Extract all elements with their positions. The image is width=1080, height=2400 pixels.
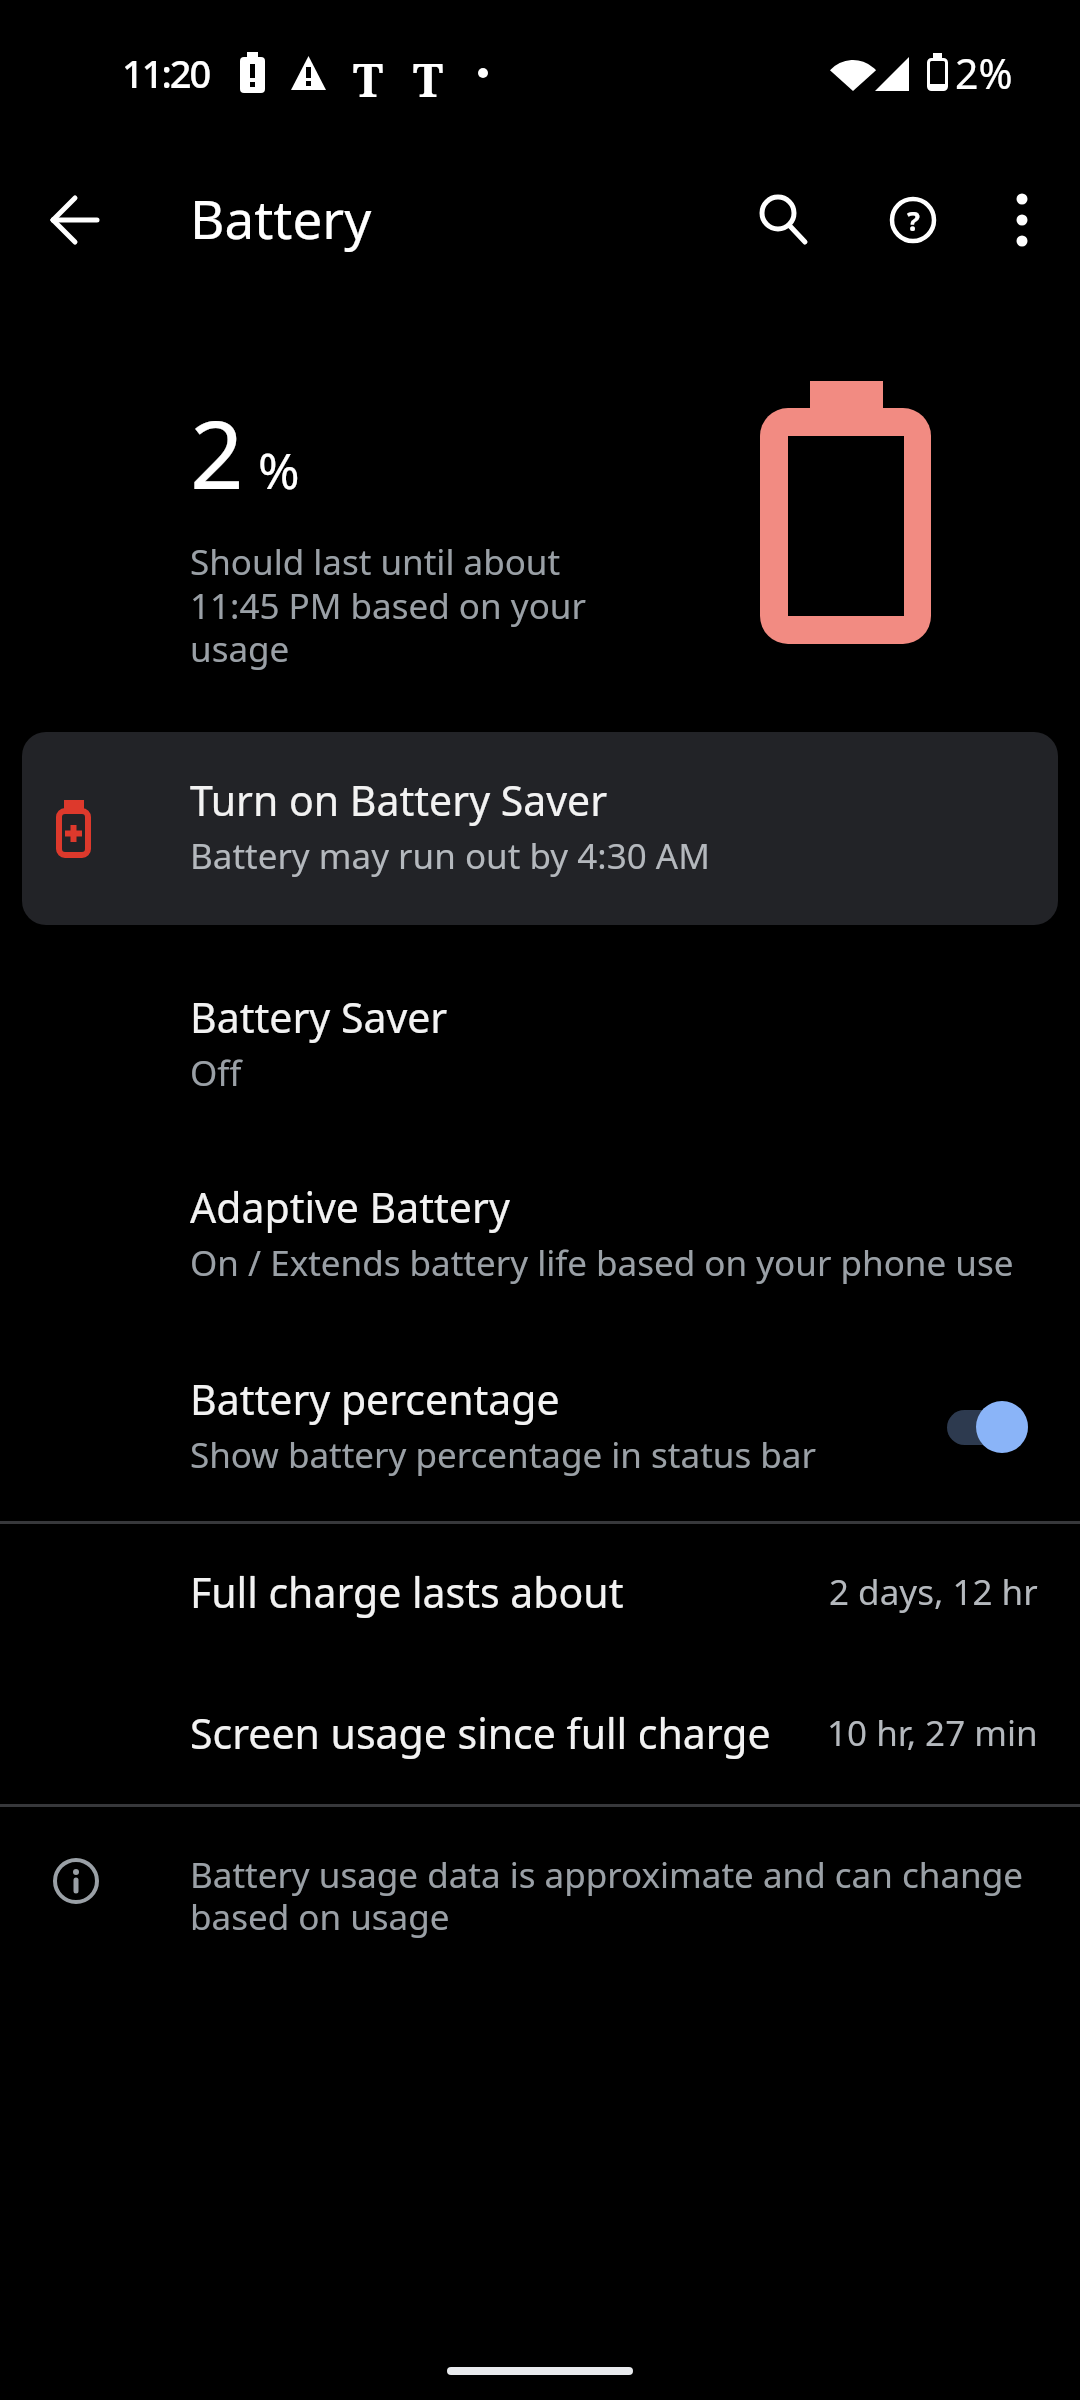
staticText: Turn on Battery Saver [190, 772, 608, 828]
staticText: Full charge lasts about [190, 1564, 624, 1620]
button[interactable] [974, 172, 1070, 268]
button[interactable]: Screen usage since full charge [0, 1668, 1080, 1798]
staticText: Should last until about 11:45 PM based o… [190, 538, 586, 672]
button[interactable] [27, 172, 123, 268]
staticText: 2 days, 12 hr [829, 1568, 1038, 1616]
staticText: T [413, 48, 444, 100]
button[interactable]: Full charge lasts about [0, 1527, 1080, 1657]
staticText: 2 [190, 389, 244, 517]
staticText: Battery [190, 182, 372, 254]
staticText: 10 hr, 27 min [827, 1709, 1038, 1757]
button[interactable] [736, 172, 832, 268]
staticText: 2% [955, 45, 1013, 101]
staticText: Battery usage data is approximate and ca… [190, 1851, 1023, 1940]
staticText: Off [190, 1049, 242, 1097]
staticText: Screen usage since full charge [190, 1705, 771, 1761]
staticText: Battery percentage [190, 1371, 560, 1427]
button[interactable]: Battery Saver [0, 955, 1080, 1130]
staticText: On / Extends battery life based on your … [190, 1239, 1014, 1287]
button[interactable]: Adaptive Battery [0, 1145, 1080, 1320]
staticText: Battery Saver [190, 989, 448, 1045]
staticText: 11:20 [122, 47, 210, 99]
button[interactable]: Turn on Battery Saver [22, 732, 1058, 925]
button[interactable]: ? [865, 172, 961, 268]
staticText: T [353, 48, 384, 100]
button[interactable]: Battery percentage [0, 1337, 1080, 1512]
staticText: Show battery percentage in status bar [190, 1431, 816, 1479]
staticText: Battery may run out by 4:30 AM [190, 832, 710, 880]
staticText: % [258, 436, 300, 504]
staticText: ? [907, 202, 920, 239]
staticText: Adaptive Battery [190, 1179, 510, 1235]
